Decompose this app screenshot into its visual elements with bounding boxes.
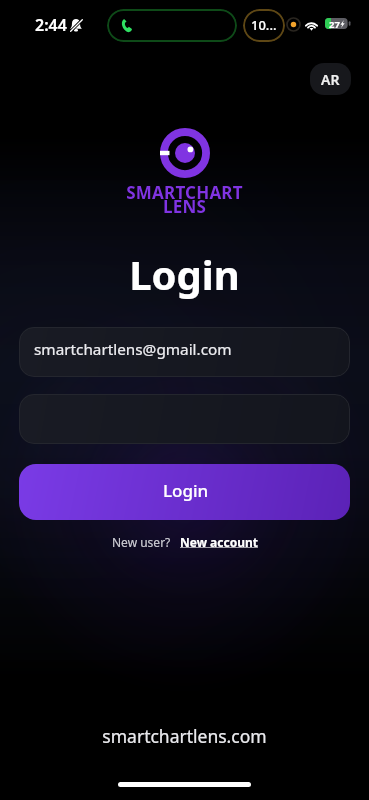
button[interactable]: Password [19, 394, 350, 444]
staticText: smartchartlens@gmail.com [34, 339, 232, 360]
staticText: 10... [251, 16, 277, 34]
staticText: AR [321, 70, 340, 89]
staticText: Login [163, 479, 209, 502]
staticText: Login [0, 247, 369, 301]
staticText: 2:44 [35, 14, 67, 36]
staticText: smartchartlens.com [0, 724, 369, 748]
button[interactable]: New account [180, 534, 258, 550]
button[interactable]: Profile AR [310, 63, 351, 95]
staticText: New account [180, 534, 258, 550]
button[interactable]: Ongoing call [107, 9, 237, 42]
button[interactable]: Timer [243, 9, 285, 42]
button[interactable]: Login [19, 464, 350, 520]
staticText: SMARTCHART LENS [0, 181, 369, 218]
button[interactable]: smartchartlens@gmail.com [19, 327, 350, 377]
staticText: New user? [112, 534, 171, 550]
staticText: 27 [329, 18, 340, 29]
